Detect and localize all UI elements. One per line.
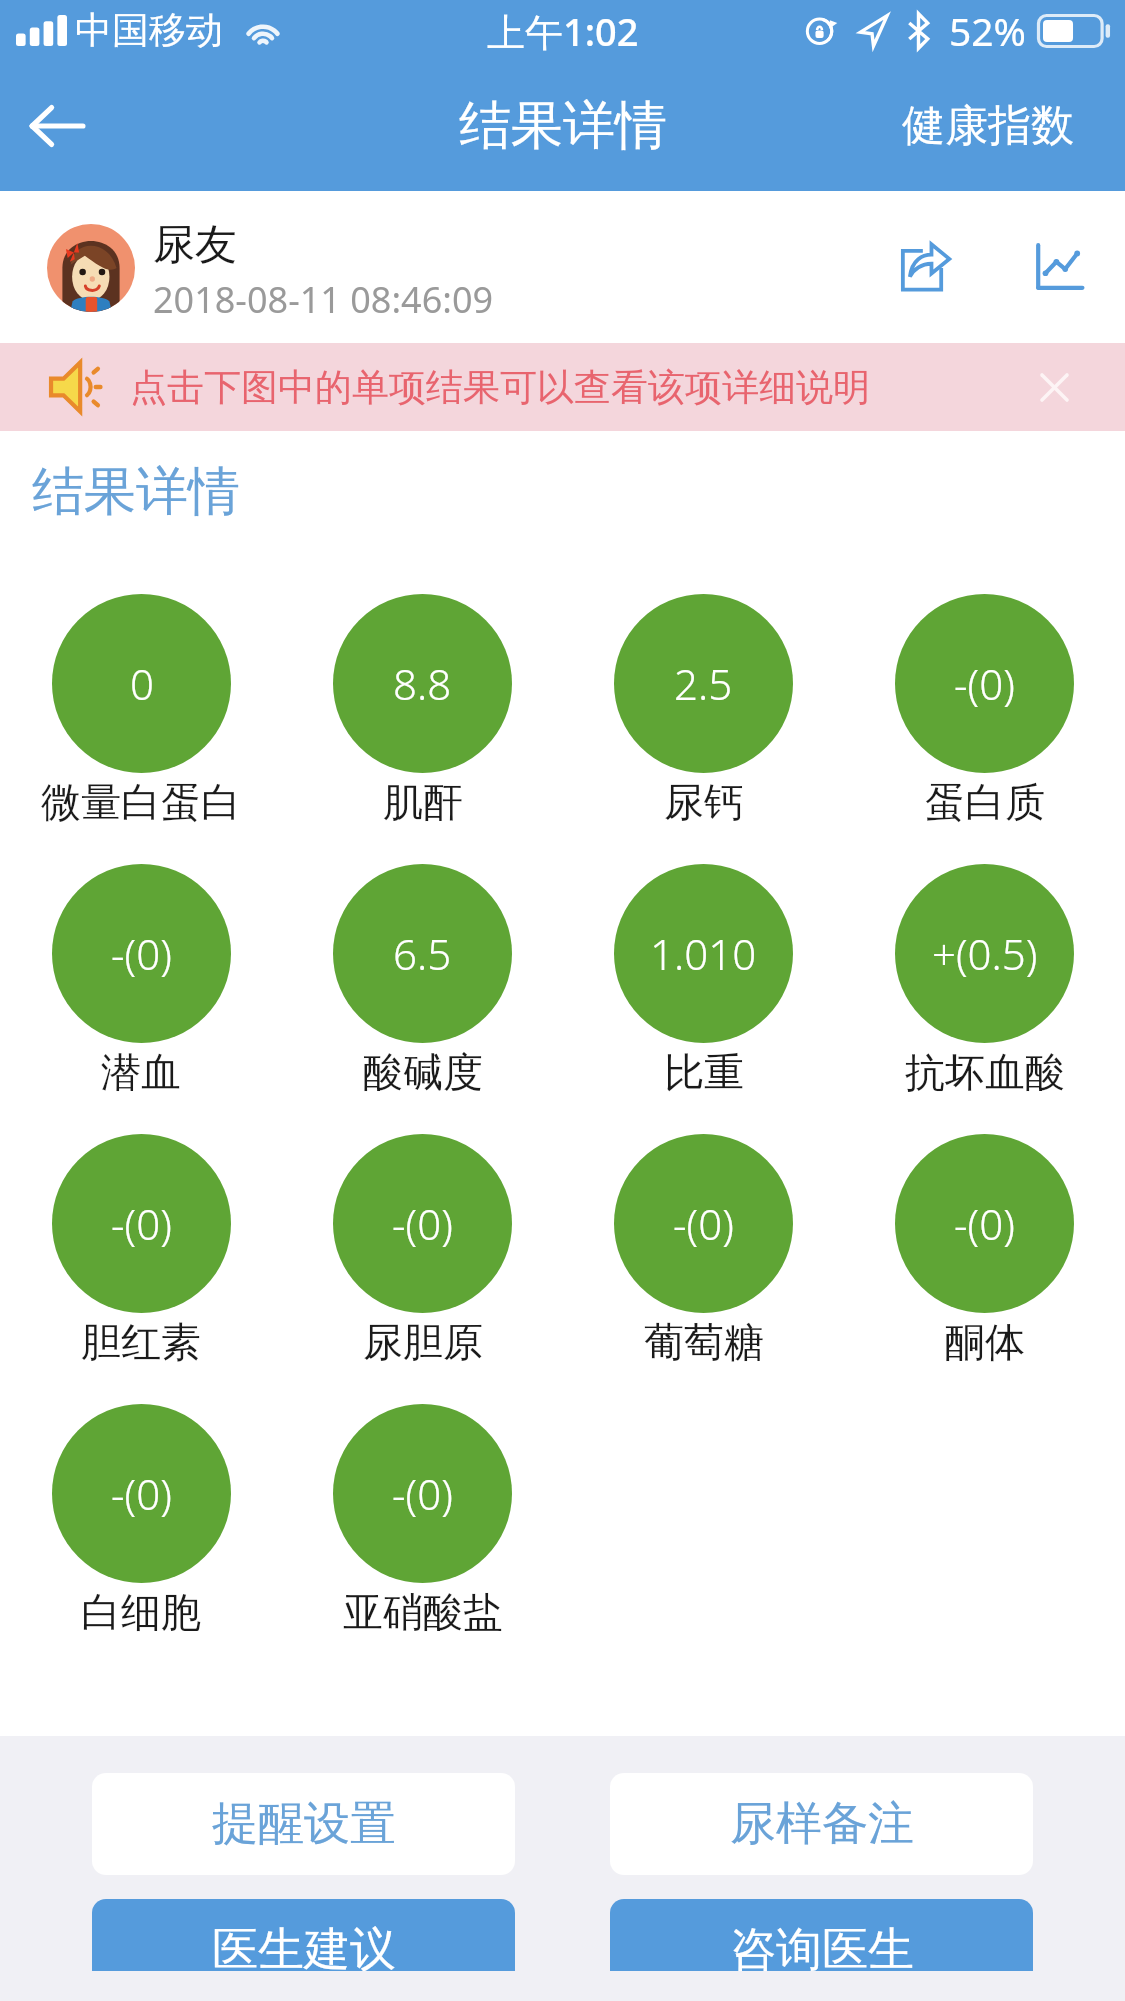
button[interactable]: 尿样备注 [610,1773,1033,1875]
button[interactable]: Trend chart [1023,231,1095,303]
button[interactable]: 0 [0,594,282,864]
staticText: 尿友 [153,219,237,272]
staticText: 抗坏血酸 [905,1047,1065,1097]
staticText: 微量白蛋白 [41,777,241,827]
button[interactable]: -(0) [563,1134,844,1404]
staticText: 点击下图中的单项结果可以查看该项详细说明 [130,364,870,411]
staticText: 健康指数 [902,99,1074,153]
staticText: 中国移动 [75,7,223,54]
staticText: 白细胞 [81,1587,201,1637]
staticText: 潜血 [101,1047,181,1097]
staticText: 尿钙 [664,777,744,827]
staticText: 1.010 [650,925,757,982]
staticText: -(0) [954,1195,1015,1252]
staticText: 胆红素 [81,1317,201,1367]
staticText: 尿胆原 [363,1317,483,1367]
button[interactable]: -(0) [282,1404,563,1674]
button[interactable]: -(0) [844,1134,1125,1404]
button[interactable]: 健康指数 [902,99,1074,153]
button[interactable]: 6.5 [282,864,563,1134]
staticText: +(0.5) [932,925,1038,982]
staticText: -(0) [392,1195,453,1252]
staticText: 医生建议 [212,1921,396,1979]
button[interactable]: Back [17,86,97,166]
staticText: 上午1:02 [487,5,639,57]
staticText: -(0) [111,1195,172,1252]
staticText: 2018-08-11 08:46:09 [153,275,494,324]
staticText: 尿样备注 [730,1795,914,1853]
staticText: 52% [949,4,1027,57]
staticText: -(0) [111,925,172,982]
staticText: 0 [130,655,154,712]
staticText: -(0) [111,1465,172,1522]
button[interactable]: 提醒设置 [92,1773,515,1875]
button[interactable]: 8.8 [282,594,563,864]
staticText: 结果详情 [459,93,667,159]
staticText: 2.5 [674,655,733,712]
button[interactable]: -(0) [844,594,1125,864]
staticText: 葡萄糖 [644,1317,764,1367]
button[interactable]: 咨询医生 [610,1899,1033,2001]
staticText: 咨询医生 [730,1921,914,1979]
staticText: 酸碱度 [363,1047,483,1097]
button[interactable]: -(0) [0,1404,282,1674]
button[interactable]: 点击下图中的单项结果可以查看该项详细说明 [0,343,1125,431]
staticText: -(0) [392,1465,453,1522]
button[interactable]: -(0) [0,1134,282,1404]
staticText: 肌酐 [383,777,463,827]
staticText: 8.8 [393,655,452,712]
staticText: 酮体 [945,1317,1025,1367]
staticText: 结果详情 [32,459,240,525]
staticText: 比重 [664,1047,744,1097]
staticText: 蛋白质 [925,777,1045,827]
button[interactable]: -(0) [0,864,282,1134]
staticText: 亚硝酸盐 [343,1587,503,1637]
staticText: 提醒设置 [212,1795,396,1853]
button[interactable]: 2.5 [563,594,844,864]
button[interactable]: Share [889,231,961,303]
staticText: -(0) [673,1195,734,1252]
button[interactable]: -(0) [282,1134,563,1404]
staticText: 6.5 [393,925,452,982]
button[interactable]: +(0.5) [844,864,1125,1134]
button[interactable]: 1.010 [563,864,844,1134]
button[interactable]: 医生建议 [92,1899,515,2001]
button[interactable]: Close [1031,364,1077,410]
staticText: -(0) [954,655,1015,712]
